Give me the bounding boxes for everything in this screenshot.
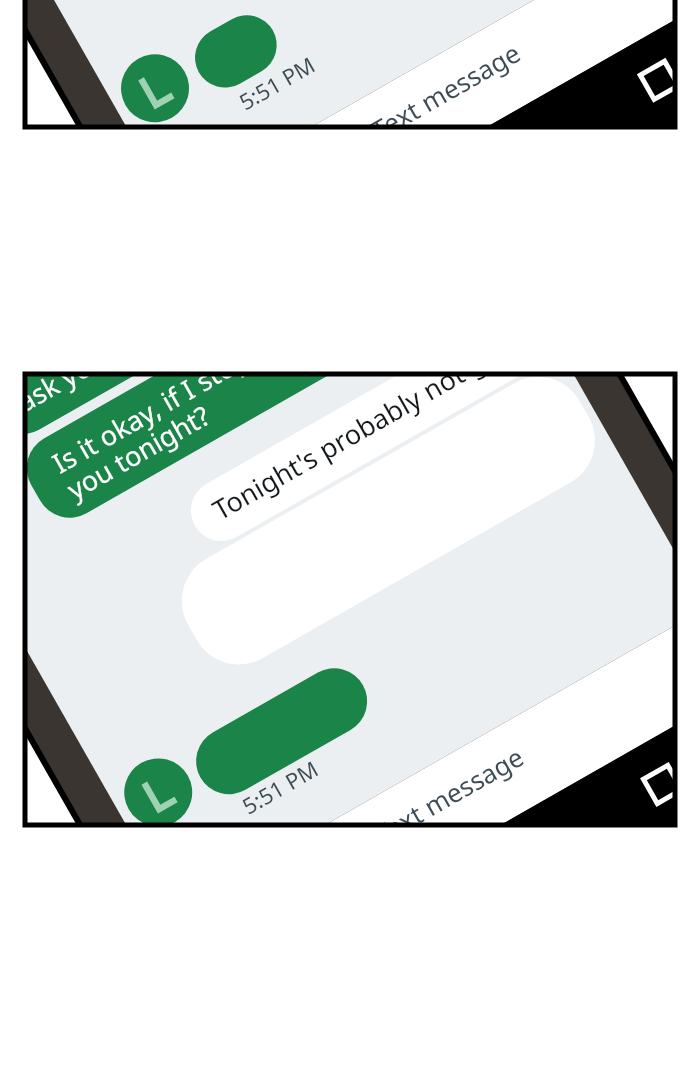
button[interactable] xyxy=(0,0,700,1076)
